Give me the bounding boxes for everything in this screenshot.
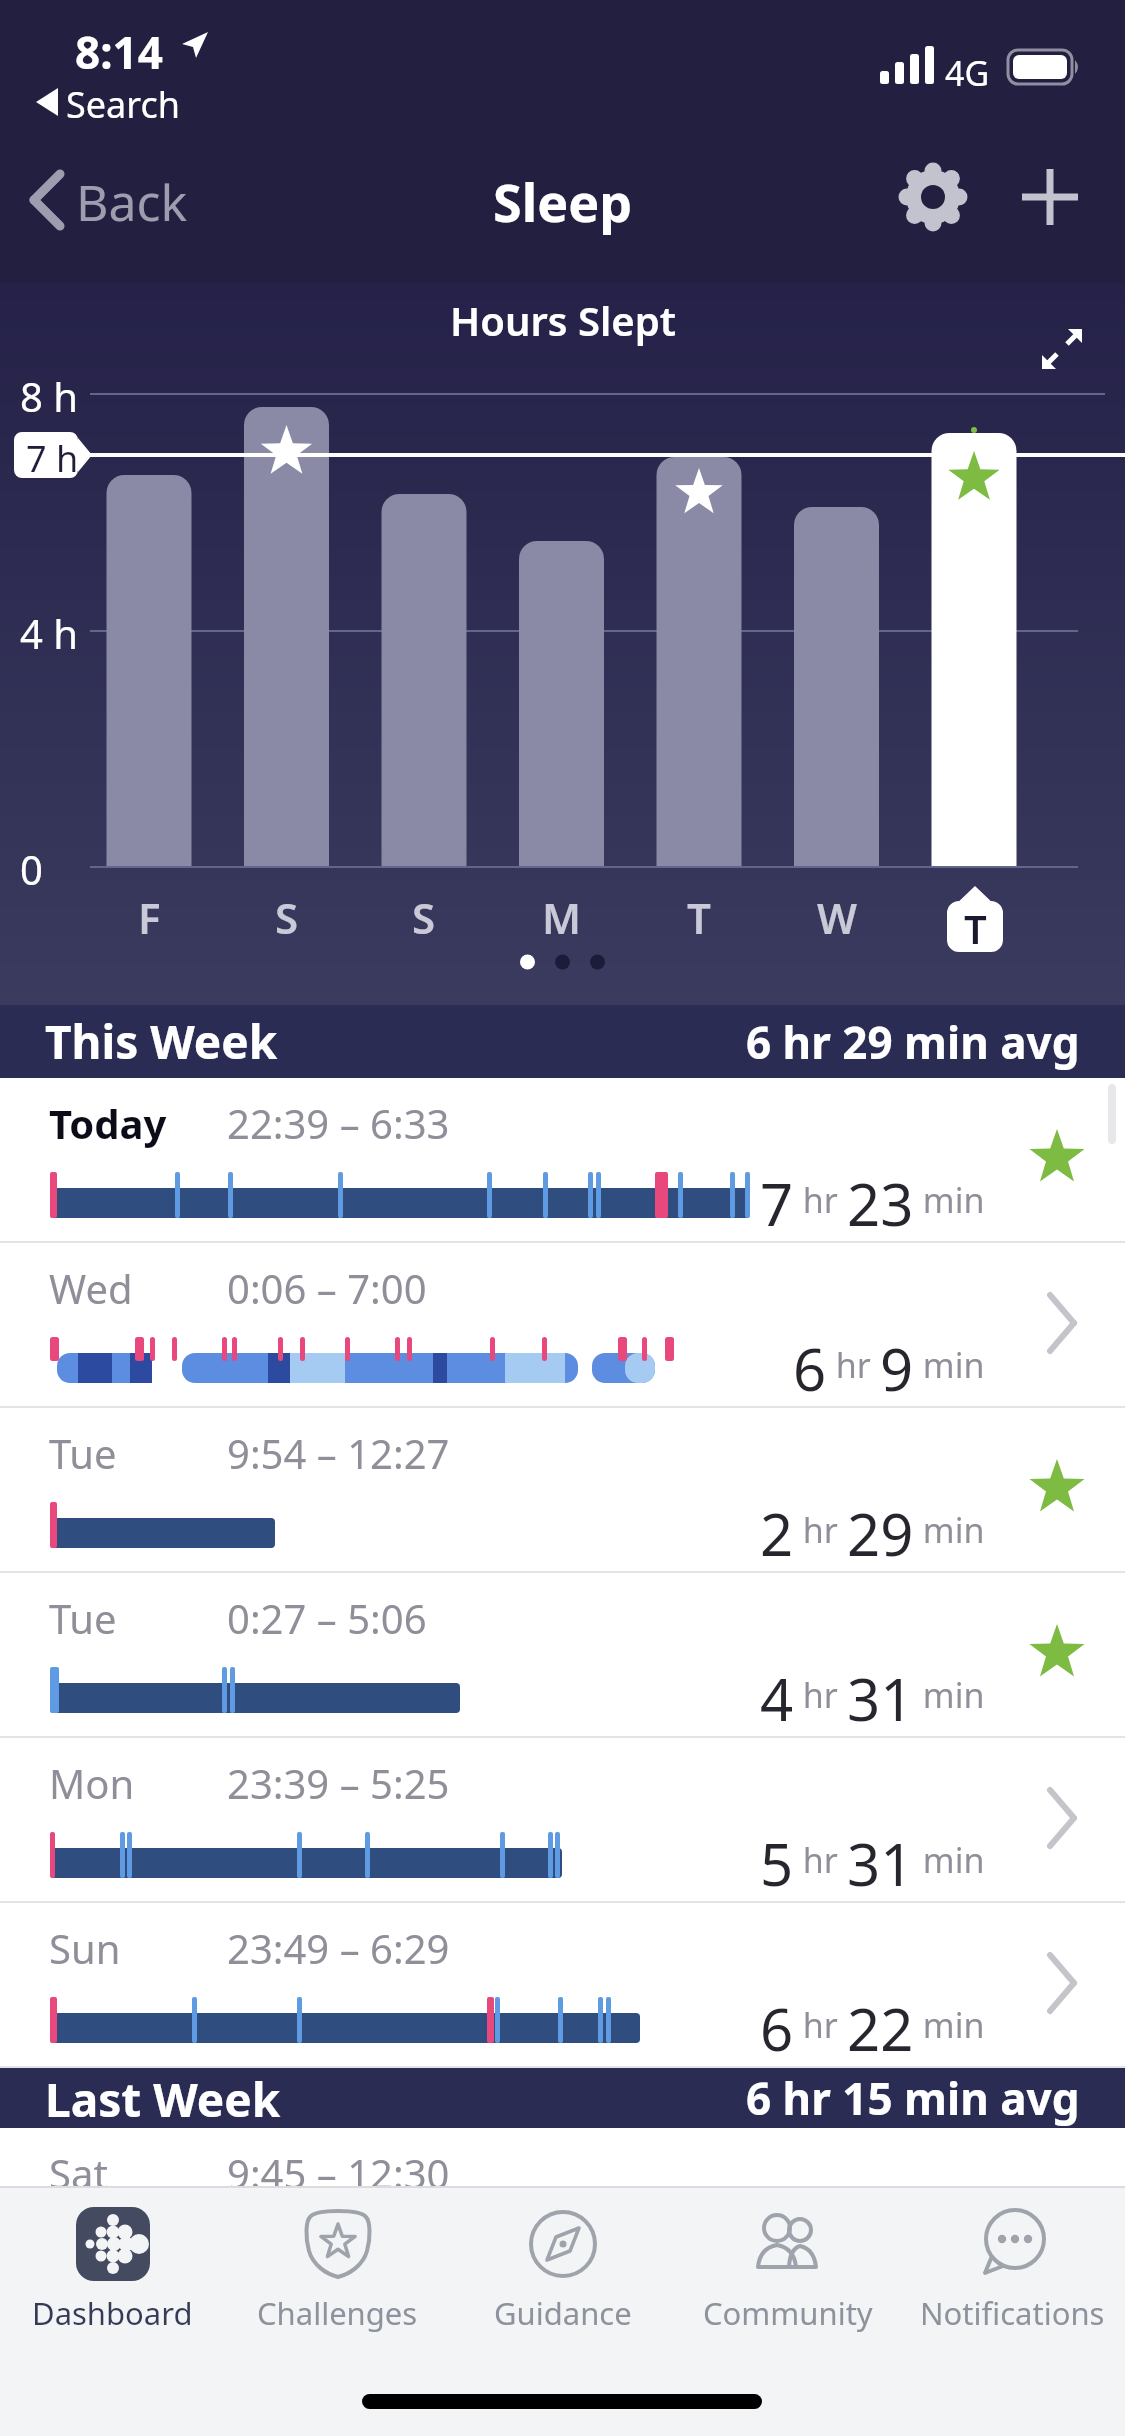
staticText: S (275, 889, 299, 945)
staticText: 6 hr 15 min avg (746, 2068, 1080, 2128)
staticText: F (138, 889, 161, 945)
staticText: M (542, 889, 582, 945)
staticText: Dashboard (32, 2292, 193, 2334)
staticText: 23:49 – 6:29 (227, 1921, 450, 1975)
staticText: Wed (49, 1261, 133, 1315)
staticText: 4 h (20, 606, 78, 660)
button[interactable]: Tue (0, 1573, 1125, 1738)
staticText: Tue (49, 1426, 117, 1480)
staticText: 8:14 (75, 22, 163, 82)
staticText: Today (49, 1096, 167, 1150)
staticText: Back (76, 168, 188, 236)
staticText: 23 (847, 1164, 914, 1228)
staticText: 0:06 – 7:00 (227, 1261, 427, 1315)
staticText: T (964, 901, 987, 952)
staticText: Sleep (493, 166, 633, 237)
staticText: W (817, 889, 858, 945)
staticText: 6 (793, 1329, 827, 1393)
staticText: Search (66, 80, 180, 129)
staticText: 0:27 – 5:06 (227, 1591, 427, 1645)
staticText: 22 (847, 1989, 914, 2053)
staticText: min (914, 1342, 985, 1388)
staticText: min (914, 2002, 985, 2048)
button[interactable]: Wed (0, 1243, 1125, 1408)
staticText: hr (794, 1177, 847, 1223)
staticText: Tue (49, 1591, 117, 1645)
button[interactable] (1038, 325, 1094, 381)
staticText: min (914, 1672, 985, 1718)
staticText: Community (703, 2292, 873, 2334)
button[interactable]: Challenges (225, 2207, 450, 2334)
button[interactable]: Guidance (450, 2207, 675, 2334)
staticText: 4G (945, 50, 990, 96)
button[interactable]: Sun (0, 1903, 1125, 2068)
staticText: hr (794, 1837, 847, 1883)
button[interactable]: Dashboard (0, 2207, 225, 2334)
button[interactable]: Back (20, 160, 240, 240)
staticText: 6 hr 29 min avg (746, 1012, 1080, 1072)
staticText: 23:39 – 5:25 (227, 1756, 450, 1810)
button[interactable]: Today (0, 1078, 1125, 1243)
staticText: 22:39 – 6:33 (227, 1096, 450, 1150)
staticText: 5 (760, 1824, 794, 1888)
staticText: S (412, 889, 436, 945)
button[interactable]: Mon (0, 1738, 1125, 1903)
staticText: 6 (760, 1989, 794, 2053)
staticText: Notifications (920, 2292, 1105, 2334)
staticText: hr (827, 1342, 880, 1388)
staticText: 9:54 – 12:27 (227, 1426, 450, 1480)
button[interactable]: Tue (0, 1408, 1125, 1573)
staticText: 7 (760, 1164, 794, 1228)
staticText: hr (794, 2002, 847, 2048)
staticText: T (687, 889, 711, 945)
staticText: 9 (880, 1329, 914, 1393)
staticText: 8 h (20, 369, 78, 423)
staticText: 4 (760, 1659, 794, 1723)
staticText: Sun (49, 1921, 121, 1975)
staticText: Last Week (45, 2068, 281, 2128)
staticText: 31 (847, 1824, 914, 1888)
staticText: 29 (847, 1494, 914, 1558)
staticText: min (914, 1507, 985, 1553)
button[interactable] (893, 157, 973, 237)
staticText: 7 h (26, 434, 79, 483)
button[interactable] (1010, 157, 1090, 237)
staticText: Sat (49, 2146, 108, 2200)
staticText: Mon (49, 1756, 135, 1810)
staticText: 2 (760, 1494, 794, 1558)
staticText: 0 (20, 842, 43, 896)
staticText: min (914, 1177, 985, 1223)
button[interactable]: Community (675, 2207, 900, 2334)
button[interactable]: Notifications (900, 2207, 1125, 2334)
staticText: This Week (45, 1010, 278, 1073)
staticText: 31 (847, 1659, 914, 1723)
staticText: Guidance (494, 2292, 632, 2334)
staticText: Challenges (257, 2292, 418, 2334)
staticText: 9:45 – 12:30 (227, 2146, 450, 2200)
staticText: hr (794, 1672, 847, 1718)
staticText: Hours Slept (450, 293, 676, 347)
staticText: min (914, 1837, 985, 1883)
staticText: hr (794, 1507, 847, 1553)
